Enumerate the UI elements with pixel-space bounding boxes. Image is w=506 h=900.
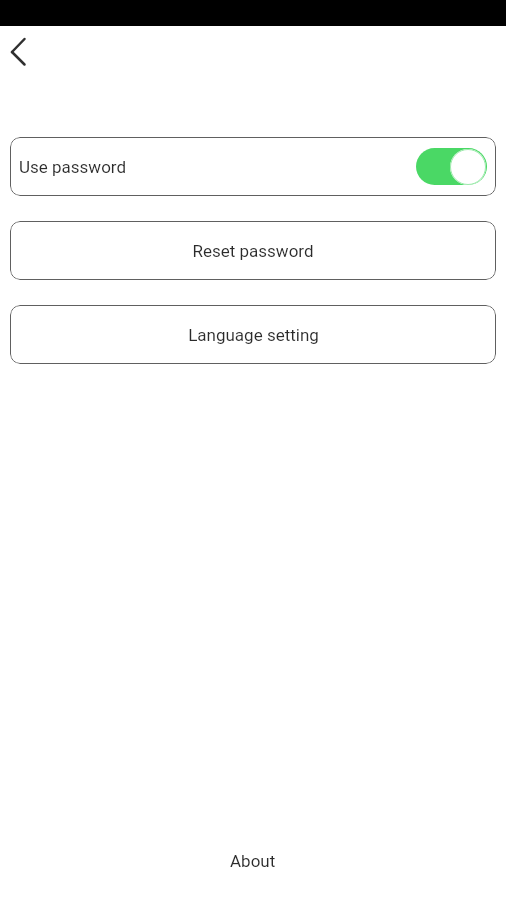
staticText: About — [230, 851, 276, 871]
button[interactable]: Reset password — [10, 221, 496, 280]
button[interactable]: Use password toggle — [416, 148, 487, 185]
button[interactable]: About — [216, 846, 290, 876]
button[interactable]: Back — [1, 30, 45, 74]
button[interactable]: Language setting — [10, 305, 496, 364]
staticText: Reset password — [192, 241, 314, 261]
button[interactable]: Use password — [10, 137, 496, 196]
staticText: Language setting — [188, 325, 319, 345]
staticText: Use password — [19, 157, 127, 177]
